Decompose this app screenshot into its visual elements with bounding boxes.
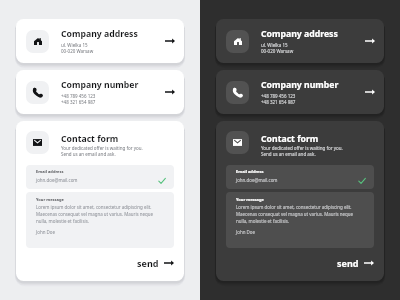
- staticText: John Doe: [36, 229, 55, 235]
- button[interactable]: Your message: [226, 192, 374, 248]
- staticText: send: [137, 257, 159, 269]
- staticText: Company number: [261, 79, 339, 91]
- button[interactable]: send: [337, 255, 374, 271]
- staticText: Contact form: [261, 133, 319, 145]
- button[interactable]: Company number: [216, 70, 384, 114]
- staticText: 00-020 Warsaw: [61, 48, 94, 54]
- staticText: Lorem ipsum dolor sit amet, consectetur …: [236, 204, 360, 224]
- staticText: John Doe: [236, 229, 255, 235]
- staticText: Your message: [236, 197, 264, 202]
- staticText: Contact form: [61, 133, 119, 145]
- staticText: Your dedicated offer is waiting for you.: [261, 145, 343, 151]
- staticText: Send us an email and ask.: [61, 151, 116, 157]
- button[interactable]: Email address: [226, 165, 374, 189]
- staticText: ul. Wielka 15: [61, 42, 88, 48]
- button[interactable]: Company address: [216, 19, 384, 63]
- staticText: Company address: [261, 28, 338, 40]
- button[interactable]: Company number: [16, 70, 184, 114]
- staticText: send: [337, 257, 359, 269]
- button[interactable]: Company number: [357, 83, 375, 101]
- staticText: Company number: [61, 79, 139, 91]
- button[interactable]: send: [137, 255, 174, 271]
- staticText: ul. Wielka 15: [261, 42, 288, 48]
- button[interactable]: Company number: [157, 83, 175, 101]
- staticText: Your message: [36, 197, 64, 202]
- staticText: Company address: [61, 28, 138, 40]
- staticText: Email address: [236, 169, 264, 174]
- staticText: Your dedicated offer is waiting for you.: [61, 145, 143, 151]
- staticText: Lorem ipsum dolor sit amet, consectetur …: [36, 204, 160, 224]
- staticText: 00-020 Warsaw: [261, 48, 294, 54]
- staticText: Email address: [36, 169, 64, 174]
- staticText: +48 321 654 987: [261, 99, 296, 105]
- button[interactable]: Your message: [26, 192, 174, 248]
- staticText: john.doe@mail.com: [236, 177, 278, 183]
- button[interactable]: Company address: [157, 32, 175, 50]
- button[interactable]: Email address: [26, 165, 174, 189]
- staticText: +48 789 456 123: [261, 93, 296, 99]
- staticText: john.doe@mail.com: [36, 177, 78, 183]
- button[interactable]: Company address: [16, 19, 184, 63]
- staticText: Send us an email and ask.: [261, 151, 316, 157]
- button[interactable]: Company address: [357, 32, 375, 50]
- staticText: +48 321 654 987: [61, 99, 96, 105]
- staticText: +48 789 456 123: [61, 93, 96, 99]
